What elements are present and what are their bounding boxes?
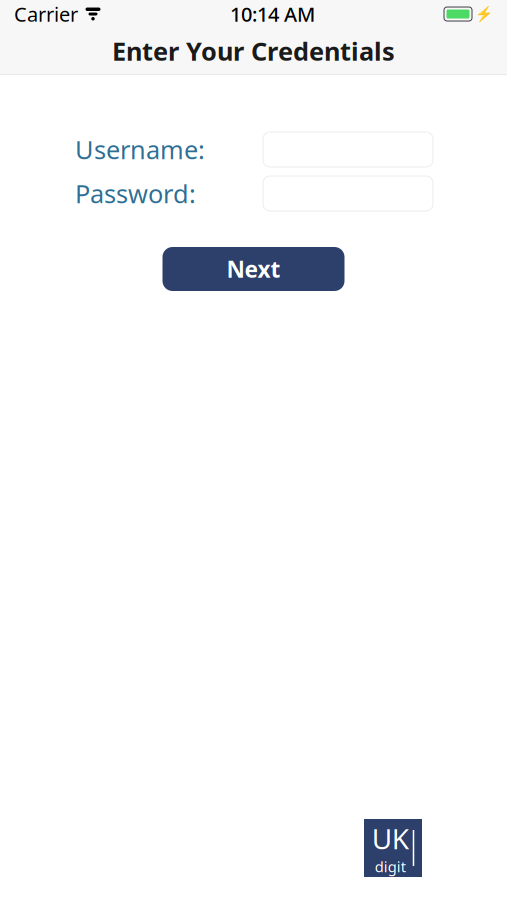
staticText: Password: <box>75 177 196 210</box>
staticText: ⚡ <box>475 6 493 22</box>
button[interactable]: Next <box>162 247 344 291</box>
staticText: Next <box>226 254 280 284</box>
staticText: Username: <box>75 133 205 166</box>
staticText: Carrier <box>14 1 78 27</box>
staticText: UK <box>372 820 409 857</box>
staticText: digit <box>375 857 406 876</box>
staticText: Enter Your Credentials <box>112 34 395 68</box>
staticText: 10:14 AM <box>230 1 315 27</box>
